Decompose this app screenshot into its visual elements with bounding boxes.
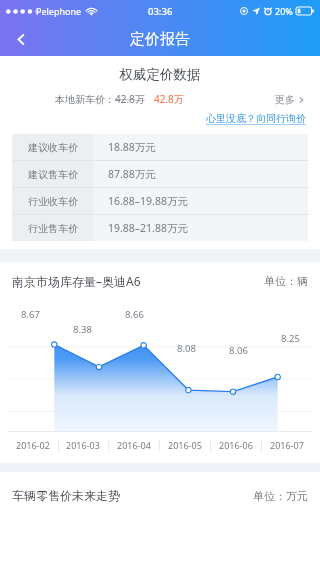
staticText: 42.8万 [115, 92, 145, 106]
staticText: 8.38 [73, 323, 92, 336]
button[interactable]: 更多 [275, 93, 304, 106]
staticText: Pelephone [36, 5, 82, 17]
staticText: 车辆零售价未来走势 [12, 488, 120, 503]
button[interactable]: 建议售车价 [12, 161, 308, 187]
staticText: 单位：辆 [264, 274, 308, 288]
staticText: 2016-05 [168, 439, 202, 451]
staticText: 8.67 [21, 308, 40, 321]
staticText: 建议收车价 [28, 141, 78, 154]
staticText: 行业收车价 [28, 195, 78, 208]
staticText: 87.88万元 [108, 167, 156, 181]
staticText: 2016-06 [219, 439, 253, 451]
staticText: 单位：万元 [253, 489, 308, 503]
staticText: 2016-04 [117, 439, 151, 451]
staticText: 建议售车价 [28, 168, 78, 181]
button[interactable]: 行业收车价 [12, 188, 308, 214]
button[interactable]: Back [3, 22, 39, 56]
staticText: 03:36 [148, 5, 173, 18]
button[interactable]: 行业售车价 [12, 215, 308, 241]
staticText: 权威定价数据 [0, 66, 320, 83]
staticText: 定价报告 [130, 30, 190, 49]
staticText: 更多 [275, 93, 295, 106]
staticText: 南京市场库存量–奥迪A6 [12, 273, 141, 289]
staticText: 2016-07 [270, 439, 304, 451]
staticText: 8.25 [281, 332, 300, 345]
staticText: 16.88–19.88万元 [108, 194, 188, 208]
button[interactable]: 建议收车价 [12, 134, 308, 160]
staticText: 19.88–21.88万元 [108, 221, 188, 235]
staticText: 20% [275, 5, 293, 17]
staticText: 2016-02 [16, 439, 50, 451]
staticText: 2016-03 [66, 439, 100, 451]
staticText: 8.66 [125, 308, 144, 321]
staticText: 18.88万元 [108, 140, 156, 154]
staticText: 42.8万 [154, 92, 184, 106]
staticText: 8.06 [229, 344, 248, 357]
staticText: 行业售车价 [28, 222, 78, 235]
button[interactable]: 心里没底？向同行询价 [206, 112, 306, 125]
staticText: 本地新车价： [55, 93, 115, 106]
staticText: 8.08 [177, 342, 196, 355]
